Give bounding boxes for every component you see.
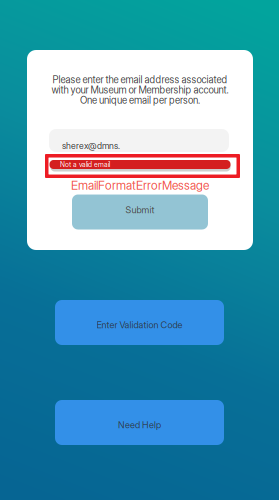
staticText: sherex@dmns. (62, 140, 120, 151)
staticText: EmailFormatErrorMessage (71, 178, 209, 193)
button[interactable]: Enter Validation Code (55, 300, 224, 345)
staticText: Submit (125, 204, 154, 215)
staticText: One unique email per person. (80, 94, 200, 106)
button[interactable]: Submit (72, 194, 208, 229)
button[interactable]: Need Help (55, 400, 224, 445)
staticText: Not a valid email (60, 160, 110, 169)
staticText: with your Museum or Membership account. (51, 84, 228, 96)
staticText: Please enter the email address associate… (52, 74, 227, 85)
staticText: Need Help (118, 419, 161, 430)
staticText: Enter Validation Code (96, 319, 182, 330)
